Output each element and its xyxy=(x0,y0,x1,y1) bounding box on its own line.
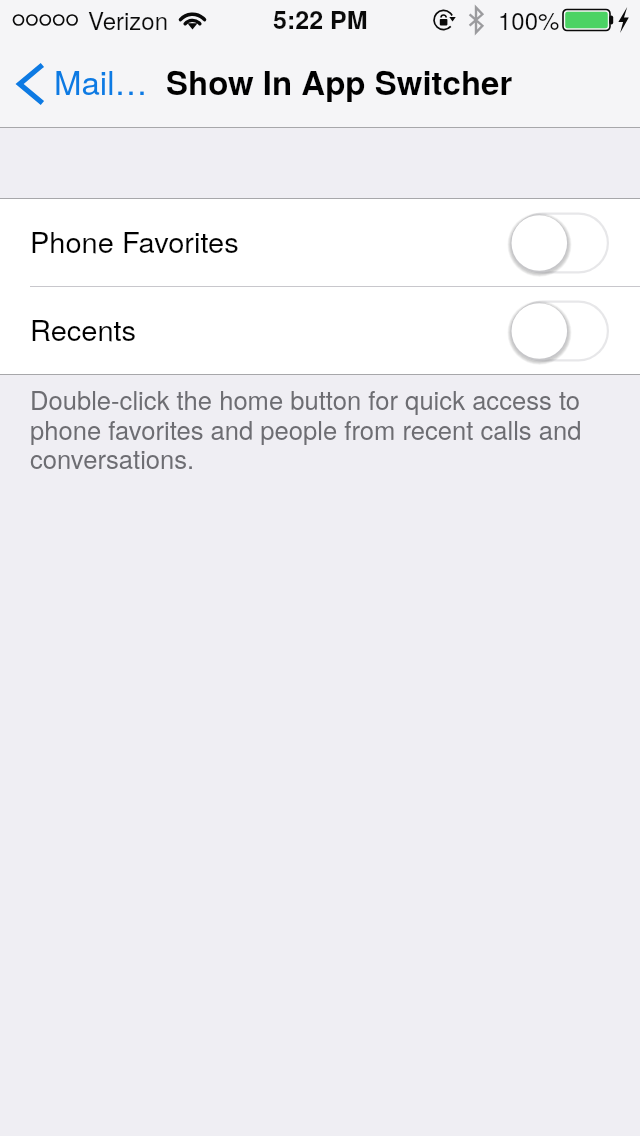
staticText: Mail… xyxy=(54,57,148,104)
button[interactable]: Recents xyxy=(0,287,640,374)
staticText: Double-click the home button for quick a… xyxy=(30,381,598,476)
staticText: Show In App Switcher xyxy=(166,58,513,105)
button[interactable]: Phone Favorites xyxy=(0,199,640,286)
staticText: 5:22 PM xyxy=(273,1,368,37)
button[interactable]: Toggle xyxy=(507,206,614,280)
button[interactable]: Mail… xyxy=(0,47,158,114)
staticText: Verizon xyxy=(88,2,169,36)
staticText: Recents xyxy=(30,308,137,350)
staticText: Phone Favorites xyxy=(30,220,239,262)
staticText: 100% xyxy=(498,2,560,36)
button[interactable]: Toggle xyxy=(507,294,614,368)
